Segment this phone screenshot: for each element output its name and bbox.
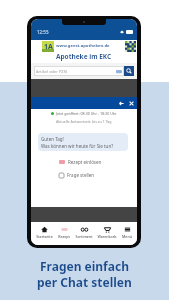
staticText: Guten Tag! (41, 136, 64, 142)
staticText: www.geest-apotheken.de (56, 43, 110, 49)
staticText: Rezept einlösen (68, 159, 102, 165)
staticText: Startseite (36, 234, 53, 239)
staticText: Was können wir heute für Sie tun? (41, 143, 114, 148)
staticText: Sortiment (75, 234, 93, 239)
button[interactable]: Sortiment (75, 222, 93, 239)
staticText: Rezept (58, 234, 70, 239)
staticText: 1A (44, 42, 53, 52)
staticText: Warenkorb (97, 234, 117, 239)
staticText: Artikel oder PZN (36, 69, 67, 74)
button[interactable]: Frage stellen (59, 172, 95, 178)
staticText: Fragen einfach (40, 258, 129, 274)
staticText: Frage stellen (67, 172, 95, 178)
button[interactable]: Warenkorb (97, 222, 117, 239)
button[interactable]: Schließen (128, 100, 135, 107)
staticText: Jetzt geöffnet: 08:30 Uhr - 18:30 Uhr (56, 111, 117, 116)
button[interactable]: Rezept einlösen (59, 159, 102, 165)
staticText: Apotheke im EKC (56, 52, 112, 61)
staticText: Aktuelle Antwortzeit: bis zu 1 Tag (56, 119, 112, 124)
staticText: 12:55 (37, 29, 49, 35)
button[interactable]: Rezept (58, 222, 70, 239)
button[interactable]: Startseite (36, 222, 53, 239)
staticText: per Chat stellen (37, 274, 132, 290)
button[interactable]: Menü (122, 222, 132, 239)
staticText: Menü (122, 234, 132, 239)
button[interactable]: Zurück (118, 100, 125, 107)
